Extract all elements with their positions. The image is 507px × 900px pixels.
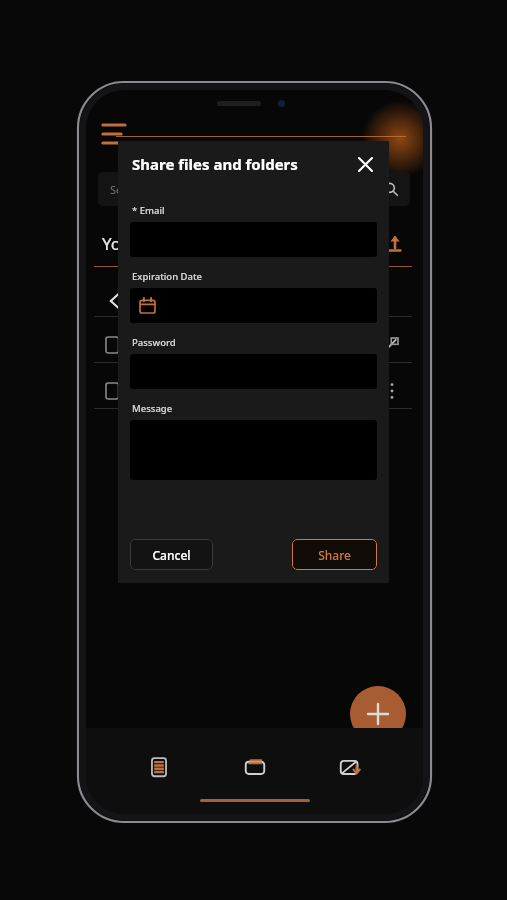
button[interactable]: Close: [351, 150, 379, 178]
staticText: Share: [318, 547, 351, 563]
button[interactable]: Menu: [103, 123, 133, 153]
button[interactable]: [130, 288, 377, 323]
button[interactable]: Back: [100, 286, 130, 316]
button[interactable]: Cancel: [130, 539, 213, 570]
button[interactable]: Search: [98, 172, 410, 206]
staticText: Share files and folders: [132, 154, 298, 174]
button[interactable]: Shared: [327, 744, 373, 790]
button[interactable]: Folders: [232, 744, 278, 790]
staticText: * Email: [132, 204, 165, 217]
staticText: Message: [132, 402, 173, 415]
staticText: Password: [132, 336, 176, 349]
button[interactable]: Documents: [136, 744, 182, 790]
button[interactable]: Add: [350, 686, 406, 742]
button[interactable]: Share: [292, 539, 377, 570]
button[interactable]: [94, 374, 412, 408]
staticText: Search: [110, 182, 145, 197]
staticText: Cancel: [152, 547, 191, 563]
staticText: Your files: [102, 232, 176, 255]
button[interactable]: [94, 328, 412, 362]
staticText: Expiration Date: [132, 270, 203, 283]
button[interactable]: Upload: [382, 230, 408, 256]
